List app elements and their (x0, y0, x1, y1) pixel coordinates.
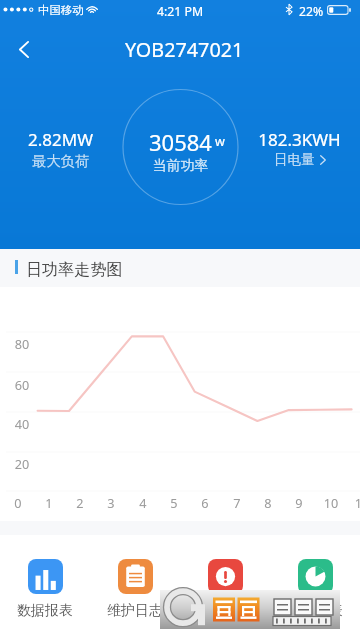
staticText: 维护日志 (107, 602, 163, 620)
staticText: 8 (255, 494, 281, 511)
button[interactable]: 维护日志 (90, 535, 180, 639)
staticText: 0 (5, 494, 31, 511)
staticText: 告警信息 (197, 602, 253, 620)
button[interactable]: 告警信息 (180, 535, 270, 639)
staticText: 60 (9, 376, 35, 393)
button[interactable]: 数据报表 (0, 535, 90, 639)
staticText: 22% (299, 3, 324, 20)
staticText: 10 (318, 494, 344, 511)
staticText: 40 (9, 415, 35, 432)
staticText: 182.3KWH (239, 128, 360, 151)
staticText: 中国移动 (38, 3, 84, 17)
staticText: 日电量 (274, 151, 315, 168)
staticText: 11 (349, 494, 360, 511)
button[interactable]: Back (2, 27, 46, 71)
staticText: 20 (9, 455, 35, 472)
staticText: 9 (286, 494, 312, 511)
staticText: 4 (130, 494, 156, 511)
staticText: 4:21 PM (157, 3, 204, 20)
staticText: 数据报表 (17, 602, 73, 620)
staticText: 6 (192, 494, 218, 511)
staticText: 5 (161, 494, 187, 511)
button[interactable]: 统计报表 (270, 535, 360, 639)
staticText: 7 (224, 494, 250, 511)
staticText: 统计报表 (287, 602, 343, 620)
staticText: 30584 (149, 127, 212, 157)
staticText: 2.82MW (0, 128, 121, 151)
staticText: 3 (98, 494, 124, 511)
staticText: 1 (36, 494, 62, 511)
staticText: 当前功率 (122, 157, 239, 175)
staticText: 80 (9, 335, 35, 352)
staticText: 最大负荷 (0, 152, 121, 170)
staticText: 日功率走势图 (26, 259, 123, 279)
staticText: 2 (67, 494, 93, 511)
staticText: YOB2747021 (125, 36, 244, 63)
staticText: w (215, 133, 225, 150)
button[interactable]: 日电量 (239, 151, 360, 168)
